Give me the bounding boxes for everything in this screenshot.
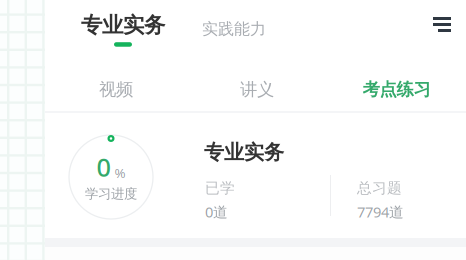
staticText: 总习题 <box>357 179 402 197</box>
button[interactable]: 实践能力 <box>202 19 266 39</box>
staticText: 讲义 <box>240 79 274 100</box>
staticText: 专业实务 <box>81 12 165 38</box>
button[interactable]: 专业实务 <box>81 12 165 47</box>
staticText: 已学 <box>205 179 235 197</box>
staticText: 学习进度 <box>85 186 137 202</box>
staticText: 0道 <box>205 202 228 221</box>
staticText: 视频 <box>99 79 133 100</box>
staticText: 专业实务 <box>204 140 284 165</box>
button[interactable]: Menu <box>433 17 451 32</box>
staticText: % <box>114 164 125 182</box>
button[interactable]: 讲义 <box>187 65 327 114</box>
staticText: 实践能力 <box>202 19 266 39</box>
staticText: 0 <box>96 150 110 184</box>
staticText: 7794道 <box>357 202 404 221</box>
button[interactable]: 视频 <box>45 65 187 114</box>
staticText: 考点练习 <box>362 79 430 100</box>
button[interactable]: 考点练习 <box>327 65 466 114</box>
